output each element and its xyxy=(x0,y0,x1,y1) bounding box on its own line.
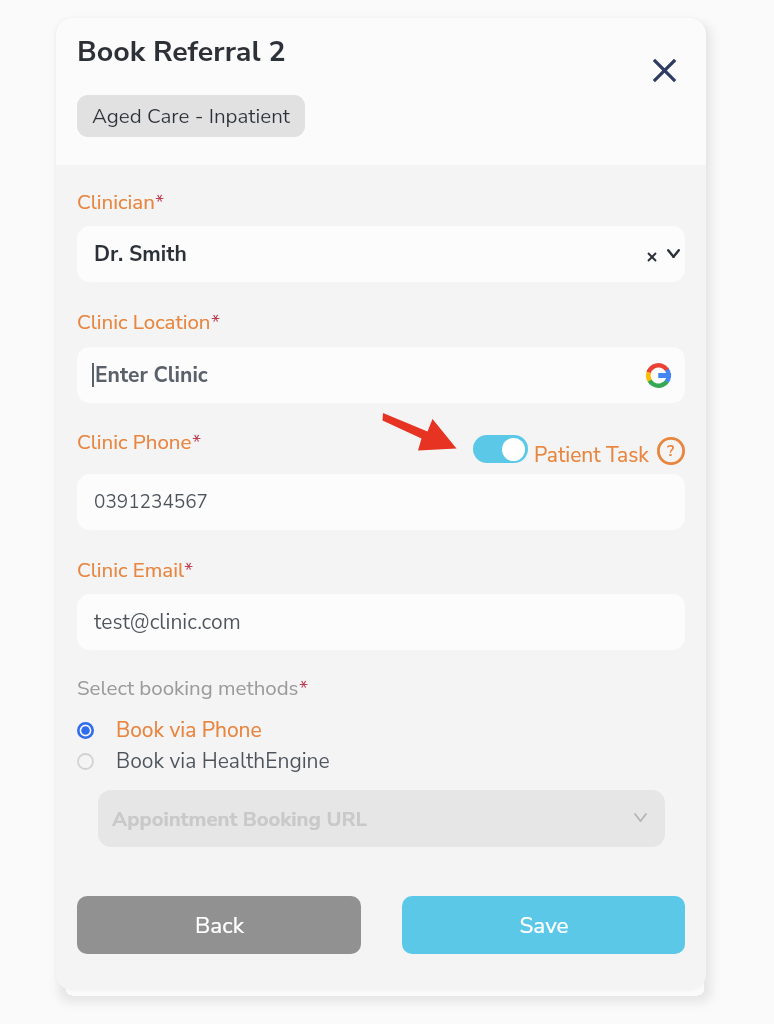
staticText: test@clinic.com xyxy=(94,608,241,637)
staticText: Select booking methods xyxy=(77,674,299,702)
staticText: Enter Clinic xyxy=(95,361,646,390)
button[interactable]: Save xyxy=(402,896,685,954)
staticText: Save xyxy=(519,910,569,941)
other: Clear clinician xyxy=(648,253,656,261)
button[interactable]: Appointment Booking URL xyxy=(98,790,665,847)
staticText: * xyxy=(299,674,309,702)
staticText: Book Referral 2 xyxy=(77,32,286,71)
button[interactable]: Help xyxy=(657,437,685,465)
staticText: Clinic Email xyxy=(77,556,184,584)
staticText: Book via HealthEngine xyxy=(116,747,330,776)
button[interactable]: Book via HealthEngine xyxy=(77,746,377,776)
staticText: Clinic Phone xyxy=(77,428,192,456)
staticText: Clinician xyxy=(77,188,155,216)
staticText: ? xyxy=(667,440,675,462)
staticText: Patient Task xyxy=(534,441,649,470)
staticText: 0391234567 xyxy=(94,489,209,515)
staticText: Aged Care - Inpatient xyxy=(92,102,291,130)
button[interactable]: Enter Clinic xyxy=(77,347,685,403)
staticText: * xyxy=(155,188,165,216)
button[interactable]: Book via Phone xyxy=(77,715,377,745)
button[interactable]: test@clinic.com xyxy=(77,594,685,650)
button[interactable]: Patient Task toggle xyxy=(473,435,528,463)
button[interactable]: Back xyxy=(77,896,361,954)
staticText: Book via Phone xyxy=(116,716,262,745)
button[interactable]: Dr. Smith xyxy=(77,226,685,282)
staticText: Clinic Location xyxy=(77,308,211,336)
staticText: Dr. Smith xyxy=(94,240,187,269)
staticText: * xyxy=(192,428,202,456)
staticText: * xyxy=(211,308,221,336)
staticText: * xyxy=(184,556,194,584)
staticText: Back xyxy=(195,910,244,941)
staticText: Appointment Booking URL xyxy=(112,805,367,833)
button[interactable]: 0391234567 xyxy=(77,474,685,530)
button[interactable]: Close xyxy=(643,49,685,91)
button[interactable]: Aged Care - Inpatient xyxy=(77,95,305,137)
